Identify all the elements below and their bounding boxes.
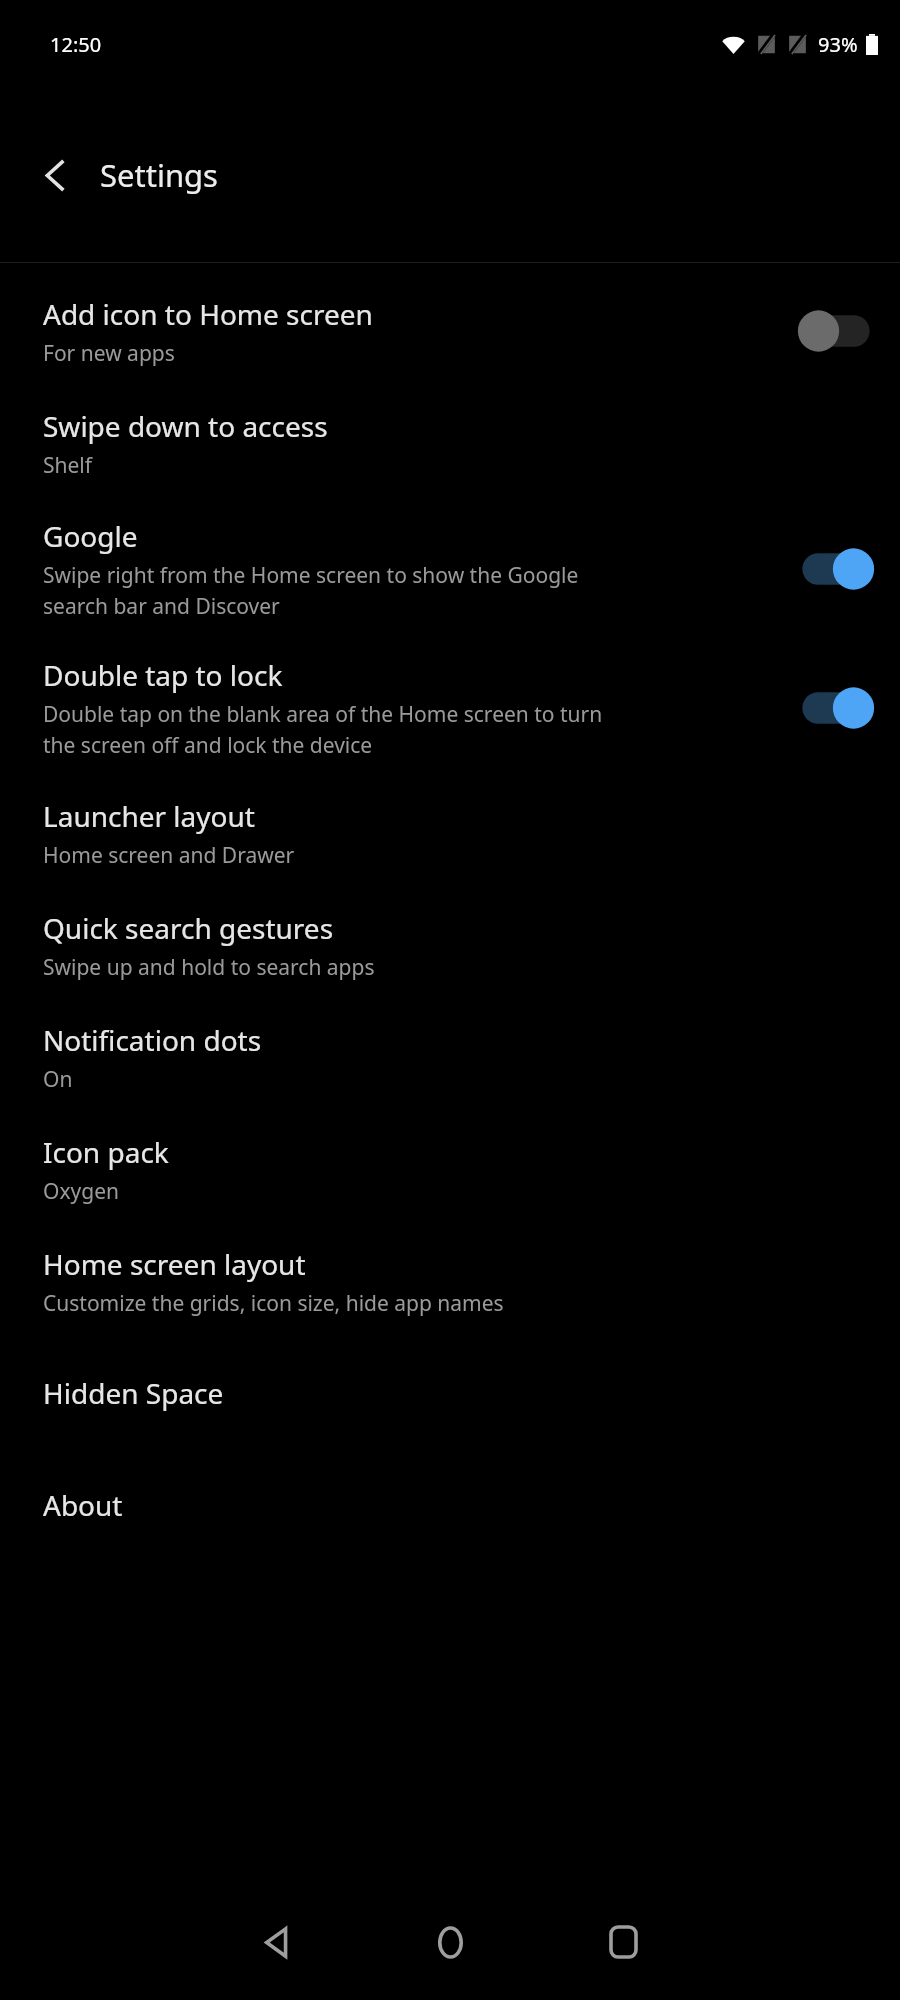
button[interactable]: Icon pack [0, 1113, 900, 1225]
button[interactable]: Swipe down to access [0, 387, 900, 499]
button[interactable]: On [796, 545, 876, 593]
staticText: Home screen layout [43, 1245, 306, 1283]
staticText: Hidden Space [43, 1374, 224, 1412]
staticText: Oxygen [43, 1177, 119, 1206]
button[interactable]: Hidden Space [0, 1337, 900, 1449]
staticText: 12:50 [50, 31, 102, 58]
button[interactable]: Home screen layout [0, 1225, 900, 1337]
staticText: Notification dots [43, 1021, 262, 1059]
button[interactable]: Launcher layout [0, 777, 900, 889]
staticText: Settings [100, 154, 218, 196]
button[interactable]: Home [364, 1884, 537, 2000]
staticText: Swipe up and hold to search apps [43, 953, 375, 982]
button[interactable]: About [0, 1449, 900, 1561]
staticText: Quick search gestures [43, 909, 334, 947]
staticText: On [43, 1065, 73, 1094]
button[interactable]: Off [796, 307, 876, 355]
staticText: For new apps [43, 339, 175, 368]
button[interactable]: Back [191, 1884, 364, 2000]
button[interactable]: Recent apps [537, 1884, 710, 2000]
staticText: Add icon to Home screen [43, 295, 373, 333]
staticText: Swipe down to access [43, 407, 328, 445]
staticText: Customize the grids, icon size, hide app… [43, 1289, 504, 1318]
staticText: Swipe right from the Home screen to show… [43, 561, 579, 620]
button[interactable]: Quick search gestures [0, 889, 900, 1001]
button[interactable]: Double tap to lock [0, 638, 900, 777]
button[interactable]: Notification dots [0, 1001, 900, 1113]
staticText: Shelf [43, 451, 92, 480]
staticText: Home screen and Drawer [43, 841, 295, 870]
button[interactable]: Add icon to Home screen [0, 275, 900, 387]
button[interactable]: Google [0, 499, 900, 638]
staticText: 93% [818, 31, 858, 58]
button[interactable]: Back [24, 143, 88, 207]
staticText: Launcher layout [43, 797, 255, 835]
staticText: About [43, 1486, 123, 1524]
staticText: Google [43, 517, 138, 555]
button[interactable]: On [796, 684, 876, 732]
staticText: Icon pack [43, 1133, 169, 1171]
staticText: Double tap to lock [43, 656, 283, 694]
staticText: Double tap on the blank area of the Home… [43, 700, 603, 759]
